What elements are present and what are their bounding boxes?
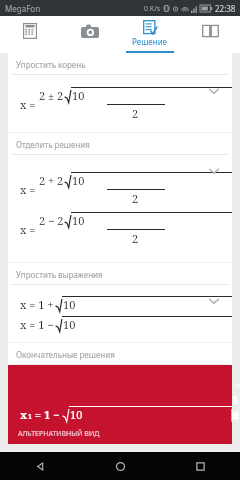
staticText: 2 + 2	[39, 173, 64, 188]
staticText: x = 1 −	[20, 317, 54, 332]
staticText: 10	[72, 213, 85, 228]
staticText: x	[20, 407, 28, 422]
staticText: 2	[132, 231, 139, 246]
button[interactable]: Calculator	[0, 16, 60, 53]
staticText: 10	[63, 317, 76, 332]
staticText: x = 1 +	[20, 297, 54, 312]
button[interactable]: Home	[80, 452, 160, 480]
staticText: = 1 −	[32, 407, 63, 422]
staticText: x =	[20, 97, 36, 112]
button[interactable]: Camera	[60, 16, 120, 53]
button[interactable]: Back	[0, 452, 80, 480]
staticText: x =	[20, 222, 36, 237]
button[interactable]: Expand	[208, 295, 220, 307]
staticText: Упростить корень	[16, 59, 86, 70]
staticText: 22:38	[215, 3, 236, 14]
staticText: Отделить решения	[16, 139, 90, 150]
staticText: 10	[70, 407, 83, 422]
staticText: 2 ± 2	[39, 88, 64, 103]
button[interactable]: Expand	[208, 165, 220, 177]
staticText: 0 K/s	[144, 4, 161, 14]
staticText: 2	[132, 106, 139, 121]
button[interactable]: Recents	[160, 452, 240, 480]
staticText: 10	[72, 173, 85, 188]
button[interactable]: x	[8, 365, 232, 444]
button[interactable]: x = 1 +	[8, 285, 232, 343]
staticText: 2 − 2	[39, 213, 64, 228]
button[interactable]: x =	[8, 155, 232, 263]
staticText: 10	[72, 88, 85, 103]
staticText: АЛЬТЕРНАТИВНЫЙ ВИД	[18, 429, 100, 439]
staticText: 1	[28, 412, 32, 422]
staticText: Окончательные решения	[16, 349, 115, 360]
staticText: Решение	[132, 36, 168, 47]
button[interactable]: Expand	[208, 85, 220, 97]
button[interactable]: Book	[180, 16, 240, 53]
button[interactable]: x =	[8, 75, 232, 133]
staticText: MegaFon	[5, 3, 41, 14]
button[interactable]: Решение	[120, 16, 180, 53]
staticText: Упростить выражения	[16, 269, 103, 280]
staticText: 2	[132, 191, 139, 206]
staticText: x =	[20, 182, 36, 197]
staticText: 10	[63, 297, 76, 312]
